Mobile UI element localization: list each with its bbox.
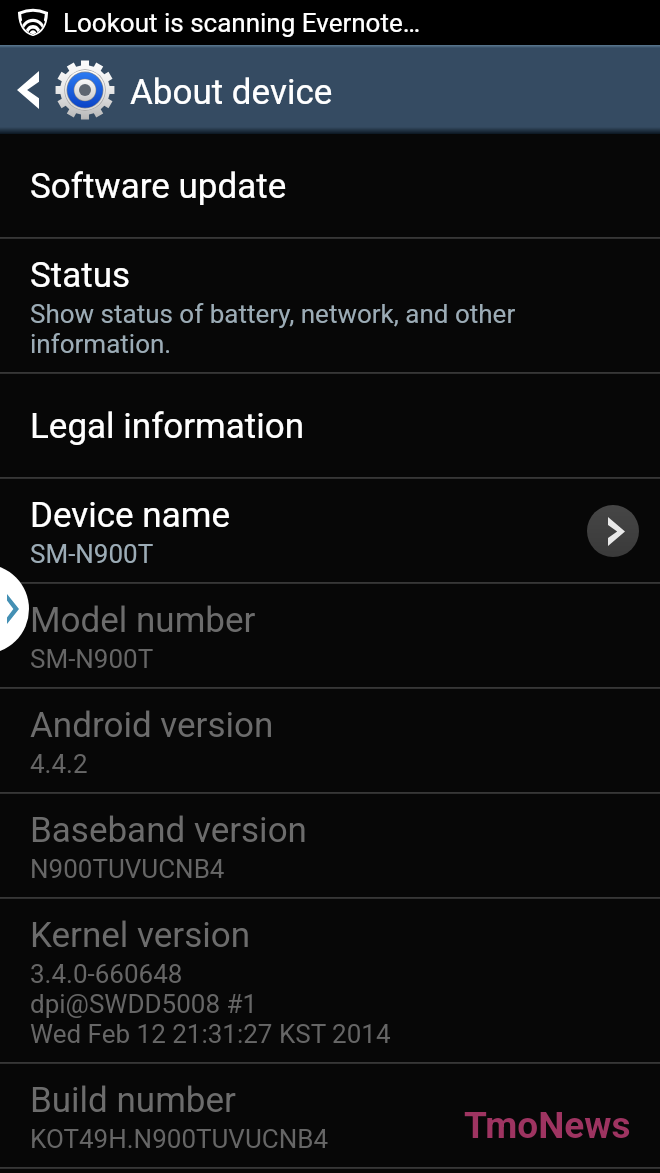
staticText: Status	[30, 255, 131, 296]
staticText: dpi@SWDD5008 #1	[30, 989, 258, 1019]
button[interactable]: Device name	[0, 479, 660, 582]
staticText: Lookout is scanning Evernote…	[63, 8, 421, 38]
button[interactable]: Software update	[0, 134, 660, 237]
staticText: Software update	[30, 166, 287, 207]
button[interactable]: Legal information	[0, 374, 660, 477]
staticText: Legal information	[30, 406, 305, 447]
staticText: information.	[30, 329, 172, 359]
staticText: N900TUVUCNB4	[30, 854, 225, 884]
staticText: Baseband version	[30, 810, 307, 851]
button[interactable]: Navigate up	[0, 45, 56, 134]
button[interactable]: Baseband version	[0, 794, 660, 897]
staticText: About device	[130, 72, 333, 113]
button[interactable]: Edit device name	[587, 505, 639, 557]
button[interactable]: Status	[0, 239, 660, 372]
button[interactable]: Model number	[0, 584, 660, 687]
staticText: SM-N900T	[30, 539, 154, 569]
staticText: Android version	[30, 705, 274, 746]
staticText: 3.4.0-660648	[30, 959, 183, 989]
button[interactable]: Build number	[0, 1064, 660, 1167]
staticText: Model number	[30, 600, 256, 641]
staticText: Device name	[30, 495, 230, 536]
button[interactable]: Open shortcut panel	[0, 564, 29, 654]
staticText: Show status of battery, network, and oth…	[30, 299, 516, 329]
button[interactable]: Android version	[0, 689, 660, 792]
staticText: Build number	[30, 1080, 236, 1121]
button[interactable]: Kernel version	[0, 899, 660, 1062]
staticText: KOT49H.N900TUVUCNB4	[30, 1124, 329, 1154]
staticText: Kernel version	[30, 915, 251, 956]
staticText: SM-N900T	[30, 644, 154, 674]
staticText: TmoNews	[464, 1104, 631, 1147]
staticText: Wed Feb 12 21:31:27 KST 2014	[30, 1019, 391, 1049]
staticText: 4.4.2	[30, 749, 88, 779]
